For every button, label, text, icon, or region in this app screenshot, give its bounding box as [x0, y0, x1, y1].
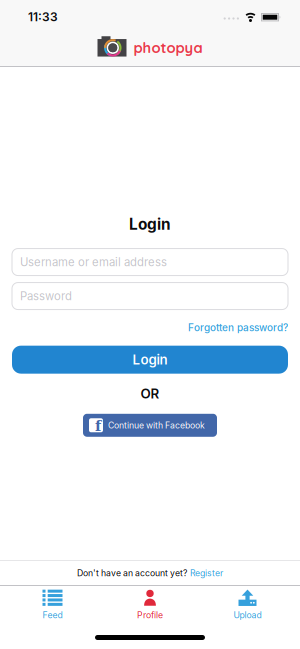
staticText: Profile: [137, 610, 163, 620]
staticText: photopya: [133, 38, 202, 57]
staticText: Don't have an account yet?: [77, 568, 187, 578]
button[interactable]: Feed: [7, 587, 97, 623]
staticText: Continue with Facebook: [108, 420, 205, 430]
button[interactable]: Register: [190, 568, 223, 578]
staticText: f: [95, 417, 101, 434]
staticText: Upload: [233, 610, 261, 620]
staticText: Login: [132, 352, 167, 368]
staticText: Username or email address: [20, 255, 167, 269]
staticText: Password: [20, 289, 72, 303]
staticText: Login: [129, 215, 171, 234]
button[interactable]: Forgotten password?: [188, 322, 288, 334]
button[interactable]: photopya home: [97, 36, 202, 57]
staticText: Forgotten password?: [188, 322, 288, 334]
staticText: OR: [140, 386, 159, 402]
button[interactable]: Upload: [202, 587, 292, 623]
staticText: Register: [190, 568, 223, 578]
staticText: Feed: [42, 610, 62, 620]
button[interactable]: Login: [0, 346, 300, 374]
button[interactable]: Profile: [105, 587, 195, 623]
button[interactable]: f: [83, 414, 217, 437]
staticText: 11:33: [28, 10, 58, 24]
